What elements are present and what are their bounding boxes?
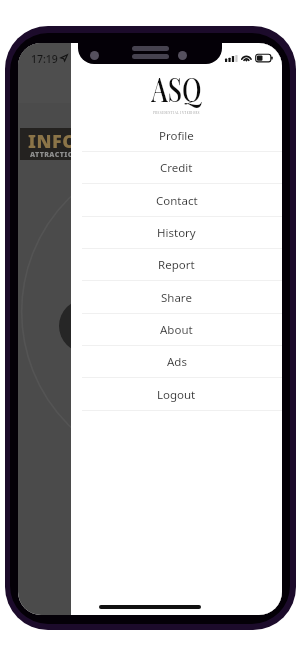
staticText: History	[157, 225, 196, 241]
button[interactable]: Logout	[71, 379, 282, 411]
staticText: PRESIDENTIAL INTERIORS	[153, 111, 200, 115]
staticText: Profile	[159, 128, 194, 144]
button[interactable]: About	[71, 314, 282, 346]
staticText: Share	[161, 290, 192, 306]
staticText: Contact	[156, 193, 198, 209]
button[interactable]: History	[71, 217, 282, 249]
staticText: ASQ	[151, 66, 202, 110]
button[interactable]: Share	[71, 282, 282, 314]
button[interactable]: Ads	[71, 346, 282, 378]
button[interactable]: Profile	[71, 120, 282, 152]
button[interactable]: Contact	[71, 185, 282, 217]
staticText: About	[160, 322, 193, 338]
staticText: Logout	[157, 387, 196, 403]
staticText: INFO	[28, 129, 77, 154]
staticText: ATTRACTION	[30, 150, 80, 160]
staticText: Report	[158, 257, 195, 273]
staticText: Credit	[160, 160, 193, 176]
button[interactable]: Report	[71, 249, 282, 281]
button[interactable]: Credit	[71, 152, 282, 184]
staticText: 17:19	[31, 52, 58, 66]
staticText: Ads	[167, 354, 187, 370]
